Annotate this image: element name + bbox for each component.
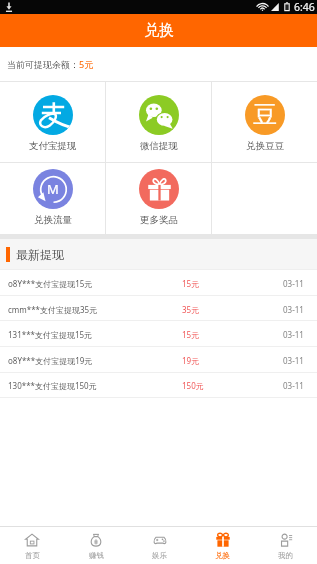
staticText: 03-11 bbox=[283, 380, 304, 391]
staticText: 我的 bbox=[278, 551, 293, 560]
staticText: 15元 bbox=[182, 329, 200, 340]
staticText: 微信提现 bbox=[140, 140, 178, 152]
button[interactable]: 豆 bbox=[212, 82, 317, 162]
button[interactable]: 更多奖品 bbox=[106, 163, 211, 234]
staticText: 35元 bbox=[182, 304, 200, 315]
staticText: cmm***支付宝提现35元 bbox=[8, 304, 98, 315]
button[interactable]: o8Y***支付宝提现15元 bbox=[0, 270, 317, 296]
staticText: o8Y***支付宝提现19元 bbox=[8, 355, 93, 366]
staticText: 5元 bbox=[79, 58, 94, 70]
staticText: 03-11 bbox=[283, 278, 304, 289]
staticText: 兑换 bbox=[215, 551, 230, 560]
staticText: 兑换 bbox=[144, 21, 174, 40]
button[interactable]: M bbox=[0, 163, 105, 234]
staticText: M bbox=[47, 180, 59, 198]
button[interactable]: 131***支付宝提现15元 bbox=[0, 321, 317, 347]
button[interactable]: Profile bbox=[254, 527, 317, 564]
button[interactable]: cmm***支付宝提现35元 bbox=[0, 296, 317, 322]
staticText: 03-11 bbox=[283, 329, 304, 340]
staticText: 更多奖品 bbox=[140, 214, 178, 226]
staticText: 当前可提现余额： bbox=[7, 59, 79, 70]
staticText: 15元 bbox=[182, 278, 200, 289]
button[interactable]: Entertainment bbox=[128, 527, 191, 564]
staticText: 兑换豆豆 bbox=[246, 140, 284, 152]
button[interactable]: 支付宝提现 bbox=[0, 82, 105, 162]
staticText: 131***支付宝提现15元 bbox=[8, 329, 93, 340]
staticText: o8Y***支付宝提现15元 bbox=[8, 278, 93, 289]
staticText: 兑换流量 bbox=[34, 214, 72, 226]
staticText: 赚钱 bbox=[89, 551, 104, 560]
staticText: 19元 bbox=[182, 355, 200, 366]
staticText: 娱乐 bbox=[152, 551, 167, 560]
staticText: 150元 bbox=[182, 380, 204, 391]
staticText: 首页 bbox=[25, 551, 40, 560]
button[interactable]: 130***支付宝提现150元 bbox=[0, 372, 317, 398]
staticText: 03-11 bbox=[283, 304, 304, 315]
button[interactable]: Redeem bbox=[191, 527, 254, 564]
staticText: 03-11 bbox=[283, 355, 304, 366]
button[interactable]: Home bbox=[0, 527, 64, 564]
staticText: 支付宝提现 bbox=[29, 140, 77, 152]
button[interactable]: Earn money bbox=[64, 527, 128, 564]
staticText: 6:46 bbox=[294, 0, 315, 14]
button[interactable]: o8Y***支付宝提现19元 bbox=[0, 347, 317, 373]
staticText: 130***支付宝提现150元 bbox=[8, 380, 97, 391]
staticText: 豆 bbox=[253, 100, 277, 130]
button[interactable]: 微信提现 bbox=[106, 82, 211, 162]
staticText: 最新提现 bbox=[16, 247, 64, 262]
